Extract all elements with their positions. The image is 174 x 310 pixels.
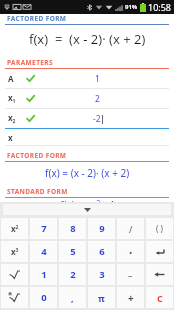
staticText: f(x) = (x - 2)· (x + 2) [45, 166, 130, 180]
button[interactable]: 2 [59, 264, 86, 285]
staticText: 7 [41, 222, 47, 235]
staticText: / [129, 223, 133, 235]
staticText: + [128, 291, 134, 305]
staticText: x [8, 132, 13, 143]
button[interactable]: 6 [88, 241, 115, 262]
button[interactable]: Pi [88, 287, 115, 308]
staticText: A [8, 73, 14, 84]
staticText: x3 [11, 246, 19, 257]
staticText: f(x) = x2 - 4 [60, 198, 115, 202]
button[interactable]: 3 [88, 264, 115, 285]
staticText: 2 [95, 93, 100, 105]
button[interactable]: 7 [30, 218, 57, 239]
staticText: x2 [11, 223, 19, 234]
staticText: 5 [70, 245, 76, 258]
staticText: 2 [70, 268, 76, 281]
button[interactable]: Plus [117, 287, 144, 308]
button[interactable]: A [0, 69, 174, 89]
staticText: , [71, 292, 74, 304]
staticText: 10:58 [148, 1, 172, 13]
staticText: – [128, 269, 133, 281]
staticText: C [157, 292, 163, 304]
button[interactable]: x [0, 129, 174, 146]
button[interactable]: Expand keyboard [3, 204, 171, 215]
button[interactable]: 5 [59, 241, 86, 262]
staticText: STANDARD FORM [7, 187, 68, 196]
button[interactable]: Clear [146, 287, 173, 308]
staticText: 4 [41, 245, 47, 258]
staticText: FACTORED FORM [7, 151, 67, 160]
staticText: PARAMETERS [7, 58, 53, 67]
staticText: x2 [8, 112, 16, 125]
button[interactable]: Backspace [146, 264, 173, 285]
staticText: π [98, 292, 105, 304]
button[interactable]: x1 [0, 89, 174, 109]
button[interactable]: x2 [0, 109, 174, 129]
button[interactable]: Minus [117, 264, 144, 285]
staticText: 1 [95, 73, 100, 85]
staticText: 3 [99, 268, 105, 281]
staticText: 1 [41, 268, 47, 281]
button[interactable]: 0 [30, 287, 57, 308]
staticText: 9 [99, 222, 105, 235]
button[interactable]: nth root [1, 287, 28, 308]
button[interactable]: Decimal separator [59, 287, 86, 308]
button[interactable]: 4 [30, 241, 57, 262]
button[interactable]: x squared [1, 218, 28, 239]
staticText: ( ) [156, 223, 163, 234]
staticText: 91% [125, 3, 138, 11]
button[interactable]: Parentheses [146, 218, 173, 239]
button[interactable]: Enter [146, 241, 173, 262]
button[interactable]: 9 [88, 218, 115, 239]
staticText: 8 [70, 222, 76, 235]
button[interactable]: Multiply [117, 241, 144, 262]
button[interactable]: Divide [117, 218, 144, 239]
button[interactable]: square root [1, 264, 28, 285]
button[interactable]: 8 [59, 218, 86, 239]
button[interactable]: x cubed [1, 241, 28, 262]
staticText: FACTORED FORM [7, 14, 67, 23]
staticText: -2 [93, 113, 101, 125]
staticText: · [129, 244, 133, 260]
staticText: 0 [41, 291, 47, 304]
staticText: f(x) = (x - 2)· (x + 2) [29, 30, 146, 48]
staticText: x1 [8, 92, 16, 105]
button[interactable]: 1 [30, 264, 57, 285]
staticText: 6 [99, 245, 105, 258]
